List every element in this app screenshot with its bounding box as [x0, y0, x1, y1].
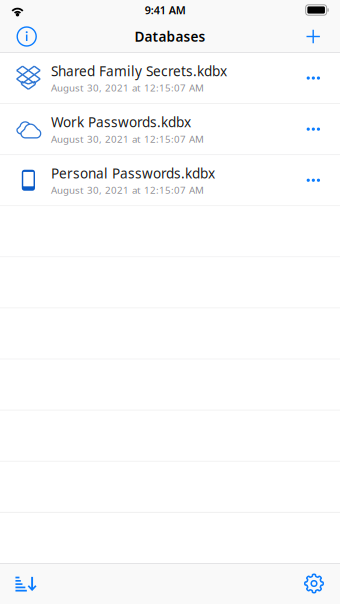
staticText: Shared Family Secrets.kdbx: [51, 62, 227, 80]
button[interactable]: Sort order: [6, 563, 46, 604]
button[interactable]: Settings: [294, 563, 334, 604]
button[interactable]: About: [8, 20, 45, 53]
button[interactable]: Shared Family Secrets.kdbx: [0, 53, 340, 104]
button[interactable]: Add database: [295, 20, 332, 53]
staticText: August 30, 2021 at 12:15:07 AM: [51, 81, 204, 94]
staticText: Personal Passwords.kdbx: [51, 164, 215, 182]
staticText: August 30, 2021 at 12:15:07 AM: [51, 132, 204, 146]
staticText: 9:41 AM: [145, 3, 186, 17]
button[interactable]: Personal Passwords.kdbx: [0, 155, 340, 206]
button[interactable]: Work Passwords.kdbx: [0, 104, 340, 155]
staticText: August 30, 2021 at 12:15:07 AM: [51, 183, 204, 197]
staticText: Databases: [134, 27, 205, 46]
staticText: Work Passwords.kdbx: [51, 113, 191, 131]
